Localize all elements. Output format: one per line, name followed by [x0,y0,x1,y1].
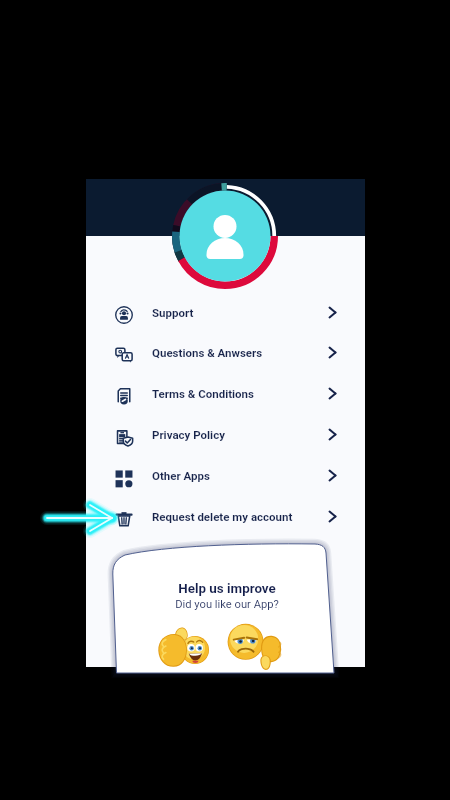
button[interactable]: Help us improve [106,539,341,667]
button[interactable]: Support [86,292,365,333]
staticText: Other Apps [152,469,210,482]
staticText: Did you like our App? [175,598,279,611]
button[interactable]: Request delete my account [86,496,365,537]
button[interactable]: Other Apps [86,455,365,496]
button[interactable]: Privacy Policy [86,414,365,455]
staticText: Terms & Conditions [152,387,254,400]
staticText: Request delete my account [152,510,293,523]
staticText: Support [152,306,194,319]
button[interactable]: Terms & Conditions [86,373,365,414]
button[interactable]: Questions & Anwsers [86,332,365,373]
staticText: Privacy Policy [152,428,225,441]
other: Pointer to request delete my account [36,498,116,538]
staticText: Questions & Anwsers [152,346,263,359]
button[interactable]: Profile picture [172,183,278,289]
staticText: Help us improve [178,581,276,597]
